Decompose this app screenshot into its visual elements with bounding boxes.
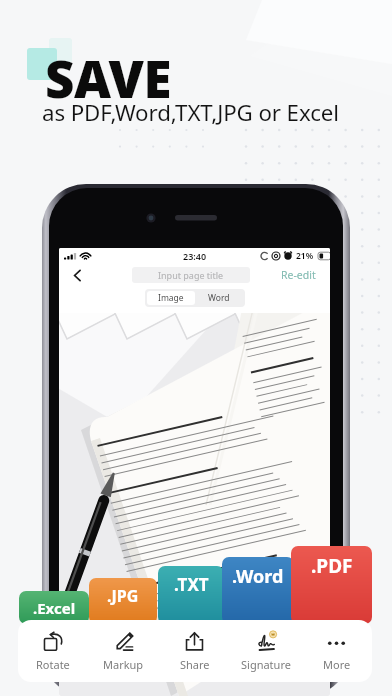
staticText: Markup	[103, 657, 144, 672]
staticText: .TXT	[174, 573, 209, 596]
staticText: SAVE	[45, 43, 172, 112]
staticText: .JPG	[107, 585, 139, 607]
button[interactable]: .TXT	[158, 566, 224, 624]
staticText: More	[323, 657, 351, 672]
button[interactable]: .Excel	[19, 591, 89, 624]
button[interactable]: Rotate	[18, 620, 88, 682]
button[interactable]: Image	[147, 291, 195, 305]
staticText: Input page title	[158, 269, 224, 281]
staticText: Word	[208, 292, 230, 304]
staticText: Image	[158, 292, 184, 304]
staticText: as PDF,Word,TXT,JPG or Excel	[42, 97, 339, 127]
staticText: Rotate	[36, 657, 70, 672]
staticText: Re-edit	[281, 268, 316, 282]
staticText: .Word	[232, 564, 284, 589]
button[interactable]: More	[301, 620, 372, 682]
button[interactable]: Share	[159, 620, 230, 682]
button[interactable]: .JPG	[89, 578, 157, 624]
button[interactable]: .PDF	[291, 546, 372, 624]
button[interactable]: Re-edit	[277, 268, 330, 282]
button[interactable]: .Word	[222, 557, 294, 624]
button[interactable]: Markup	[88, 620, 159, 682]
staticText: Signature	[241, 657, 291, 672]
staticText: 21%	[296, 250, 314, 262]
staticText: .Excel	[33, 598, 76, 618]
button[interactable]: Signature	[230, 620, 301, 682]
button[interactable]: Back	[68, 266, 86, 284]
staticText: 23:40	[183, 250, 207, 262]
staticText: Share	[180, 657, 210, 672]
staticText: .PDF	[311, 553, 353, 579]
button[interactable]: Word	[195, 291, 243, 305]
button[interactable]: Input page title	[132, 267, 250, 283]
